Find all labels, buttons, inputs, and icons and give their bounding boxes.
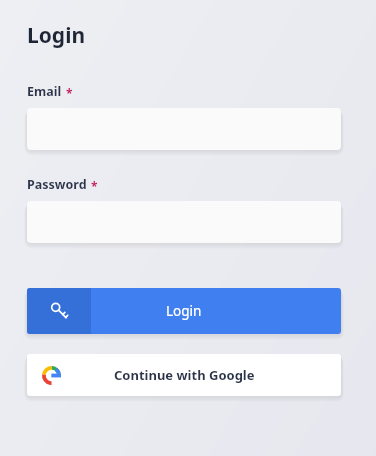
button[interactable]: Key [27,288,341,334]
staticText: * [91,178,98,194]
staticText: Login [27,21,86,50]
staticText: * [66,85,73,101]
staticText: Login [166,302,202,320]
other: Key [50,302,69,321]
staticText: Email [27,83,62,100]
staticText: Password [27,176,87,193]
button[interactable]: Continue with Google [27,354,341,396]
staticText: Continue with Google [114,366,255,384]
